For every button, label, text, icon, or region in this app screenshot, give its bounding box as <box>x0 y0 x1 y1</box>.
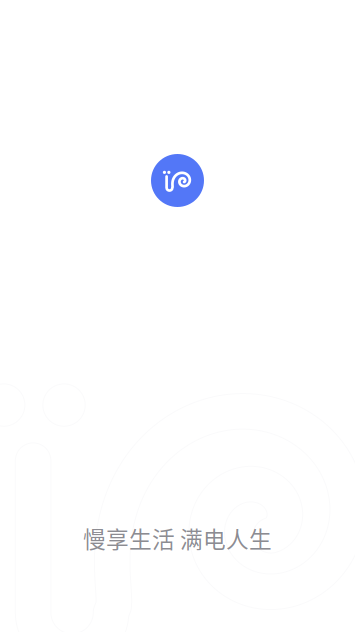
staticText: 慢享生活 满电人生 <box>83 522 272 554</box>
